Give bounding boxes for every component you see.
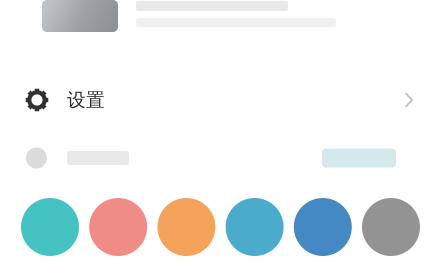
- button[interactable]: 设置: [0, 66, 438, 134]
- button[interactable]: [0, 0, 438, 32]
- staticText: 设置: [67, 88, 105, 111]
- button[interactable]: Blue: [294, 198, 352, 256]
- button[interactable]: Grey: [362, 198, 420, 256]
- button[interactable]: Teal: [21, 198, 79, 256]
- button[interactable]: Red: [89, 198, 147, 256]
- button[interactable]: [0, 134, 438, 182]
- button[interactable]: Orange: [157, 198, 215, 256]
- button[interactable]: Sky: [226, 198, 284, 256]
